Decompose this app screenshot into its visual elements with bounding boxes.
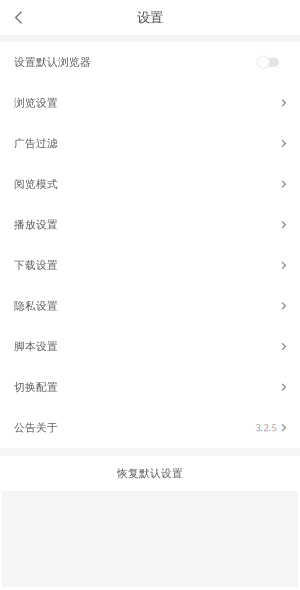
staticText: 隐私设置 [14, 299, 58, 312]
staticText: 恢复默认设置 [117, 467, 183, 480]
staticText: 3.2.5 [255, 421, 276, 434]
button[interactable]: 播放设置 [0, 204, 300, 245]
staticText: 切换配置 [14, 380, 58, 394]
button[interactable]: 切换配置 [0, 367, 300, 407]
button[interactable]: 浏览设置 [0, 83, 300, 123]
staticText: 广告过滤 [14, 137, 58, 150]
staticText: 阅览模式 [14, 177, 58, 191]
staticText: 设置默认浏览器 [14, 56, 91, 69]
button[interactable]: 返回 [0, 0, 32, 35]
button[interactable]: 广告过滤 [0, 123, 300, 164]
button[interactable]: 恢复默认设置 [0, 456, 300, 491]
button[interactable]: 设置默认浏览器 [0, 42, 300, 83]
button[interactable]: 阅览模式 [0, 164, 300, 204]
staticText: 公告关于 [14, 421, 58, 434]
staticText: 下载设置 [14, 259, 58, 272]
button[interactable]: 隐私设置 [0, 286, 300, 326]
button[interactable]: 脚本设置 [0, 326, 300, 367]
staticText: 设置 [137, 9, 163, 26]
staticText: 浏览设置 [14, 96, 58, 109]
button[interactable]: 下载设置 [0, 245, 300, 286]
staticText: 脚本设置 [14, 340, 58, 353]
button[interactable]: 公告关于 [0, 407, 300, 448]
staticText: 播放设置 [14, 218, 58, 231]
